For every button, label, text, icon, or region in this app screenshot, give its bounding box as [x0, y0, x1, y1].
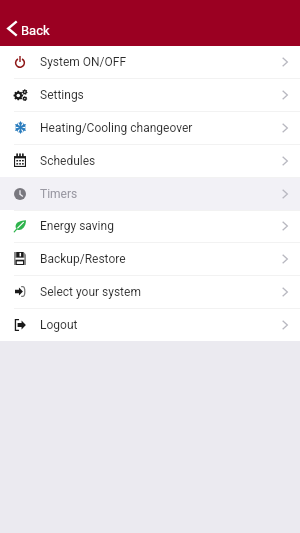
button[interactable]: Select your system — [0, 275, 300, 308]
button[interactable]: Settings — [0, 78, 300, 111]
staticText: Energy saving — [40, 219, 114, 233]
button[interactable]: Logout — [0, 308, 300, 341]
staticText: Schedules — [40, 154, 96, 168]
staticText: Heating/Cooling changeover — [40, 121, 193, 135]
staticText: Back — [21, 23, 50, 38]
button[interactable]: Backup/Restore — [0, 242, 300, 275]
staticText: Backup/Restore — [40, 252, 126, 266]
staticText: System ON/OFF — [40, 55, 127, 69]
button[interactable]: System ON/OFF — [0, 46, 300, 78]
staticText: Select your system — [40, 285, 141, 299]
staticText: Logout — [40, 318, 78, 332]
staticText: Settings — [40, 88, 84, 102]
button[interactable]: Back — [0, 17, 60, 40]
staticText: Timers — [40, 187, 78, 201]
button[interactable]: Heating/Cooling changeover — [0, 111, 300, 144]
button[interactable]: Timers — [0, 177, 300, 210]
button[interactable]: Energy saving — [0, 210, 300, 242]
button[interactable]: Schedules — [0, 144, 300, 177]
